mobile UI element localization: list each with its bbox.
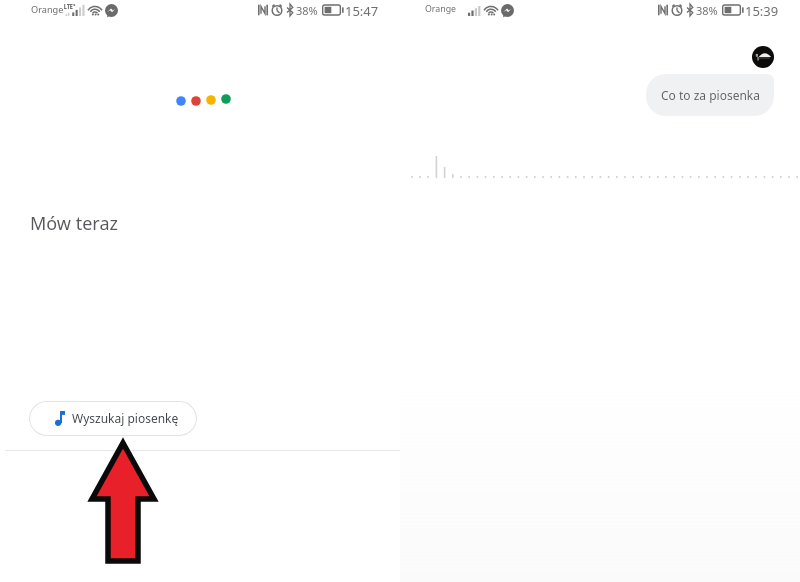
staticText: 38% — [296, 3, 318, 18]
other: Arrow pointing at the chip — [88, 440, 158, 566]
staticText: Orange — [31, 3, 64, 16]
button[interactable]: Wyszukaj piosenkę — [29, 401, 197, 436]
staticText: 15:39 — [745, 2, 779, 20]
button[interactable]: Co to za piosenka — [646, 74, 774, 116]
button[interactable]: Account — [752, 46, 774, 68]
staticText: 38% — [696, 3, 718, 18]
other: Assistant listening — [174, 93, 232, 107]
staticText: Mów teraz — [30, 211, 118, 236]
staticText: 15:47 — [345, 2, 379, 20]
staticText: Orange — [425, 3, 457, 15]
staticText: Co to za piosenka — [661, 87, 760, 103]
staticText: Wyszukaj piosenkę — [72, 410, 179, 426]
